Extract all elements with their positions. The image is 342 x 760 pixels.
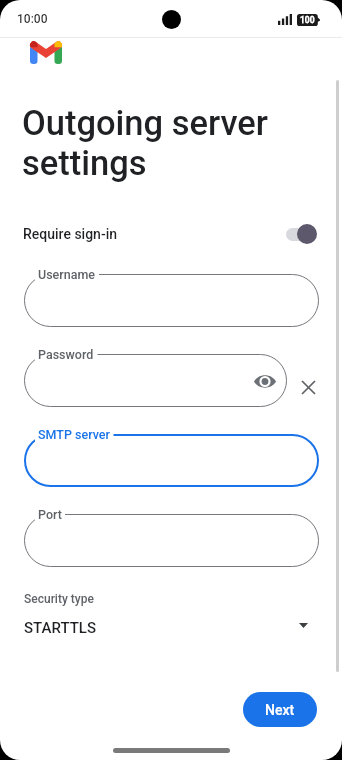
staticText: STARTTLS [24,619,96,637]
button[interactable]: Next [243,692,317,727]
staticText: SMTP server [38,427,110,442]
button[interactable]: Security type [0,586,342,645]
button[interactable]: Clear password [294,373,322,401]
button[interactable] [286,224,316,244]
button[interactable]: SMTP server [24,434,319,487]
staticText: 10:00 [17,12,48,26]
button[interactable]: Password [24,354,287,407]
button[interactable]: Require sign-in [0,216,342,252]
staticText: Security type [24,592,94,606]
staticText: Require sign-in [23,226,118,242]
button[interactable]: Port [24,514,319,567]
staticText: Port [38,507,62,522]
staticText: Outgoing server settings [22,103,269,183]
staticText: 100 [300,15,315,25]
button[interactable]: Username [24,274,319,327]
staticText: Password [38,347,94,362]
staticText: Username [38,267,96,282]
staticText: Next [265,702,295,718]
button[interactable]: Show password [251,367,279,395]
